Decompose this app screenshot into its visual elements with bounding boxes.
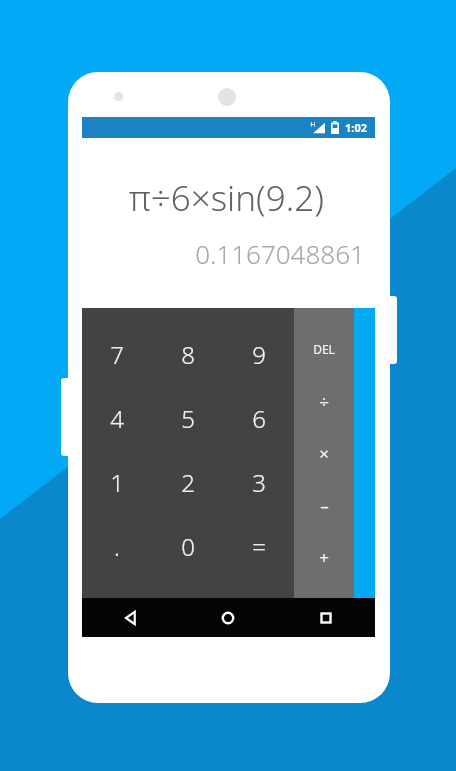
- button[interactable]: 9: [223, 322, 294, 386]
- staticText: =: [252, 530, 266, 563]
- button[interactable]: ÷: [294, 386, 354, 416]
- staticText: ×: [319, 442, 329, 465]
- button[interactable]: 7: [82, 322, 152, 386]
- staticText: 6: [252, 402, 266, 435]
- button[interactable]: 0: [152, 514, 223, 578]
- button[interactable]: 5: [152, 386, 223, 450]
- button[interactable]: 4: [82, 386, 152, 450]
- staticText: 1: [110, 466, 124, 499]
- staticText: .: [114, 530, 120, 563]
- staticText: 1:02: [345, 120, 367, 135]
- staticText: 3: [252, 466, 266, 499]
- button[interactable]: 1: [82, 450, 152, 514]
- staticText: 5: [181, 402, 195, 435]
- staticText: 9: [252, 338, 266, 371]
- staticText: 0.1167048861: [195, 236, 365, 271]
- button[interactable]: .: [82, 514, 152, 578]
- button[interactable]: =: [223, 514, 294, 578]
- staticText: 2: [181, 466, 195, 499]
- button[interactable]: ×: [294, 438, 354, 468]
- staticText: –: [320, 494, 329, 517]
- staticText: 8: [181, 338, 195, 371]
- button[interactable]: Back: [82, 598, 179, 637]
- staticText: +: [319, 546, 329, 569]
- button[interactable]: 6: [223, 386, 294, 450]
- button[interactable]: 8: [152, 322, 223, 386]
- staticText: 0: [181, 530, 195, 563]
- staticText: π÷6×sin(9.2): [129, 174, 324, 222]
- button[interactable]: +: [294, 542, 354, 572]
- staticText: DEL: [313, 341, 335, 357]
- button[interactable]: 2: [152, 450, 223, 514]
- button[interactable]: 3: [223, 450, 294, 514]
- button[interactable]: Home: [179, 598, 277, 637]
- button[interactable]: DEL: [294, 334, 354, 364]
- button[interactable]: –: [294, 490, 354, 520]
- staticText: 4: [110, 402, 124, 435]
- staticText: 7: [110, 338, 124, 371]
- button[interactable]: Recent apps: [277, 598, 375, 637]
- staticText: ÷: [319, 390, 329, 413]
